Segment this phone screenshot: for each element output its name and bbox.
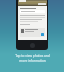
button[interactable]: Tap to view photos and (3, 54, 61, 63)
staticText: Tap to view photos and (15, 54, 50, 58)
button[interactable]: Attachment card (20, 28, 45, 37)
staticText: more information (19, 59, 46, 63)
button[interactable]: Input field (20, 10, 45, 13)
button[interactable]: Home (30, 43, 35, 48)
button[interactable]: Header action (38, 3, 46, 5)
button[interactable]: Device preview (16, 0, 48, 50)
button[interactable]: Open (41, 33, 44, 36)
